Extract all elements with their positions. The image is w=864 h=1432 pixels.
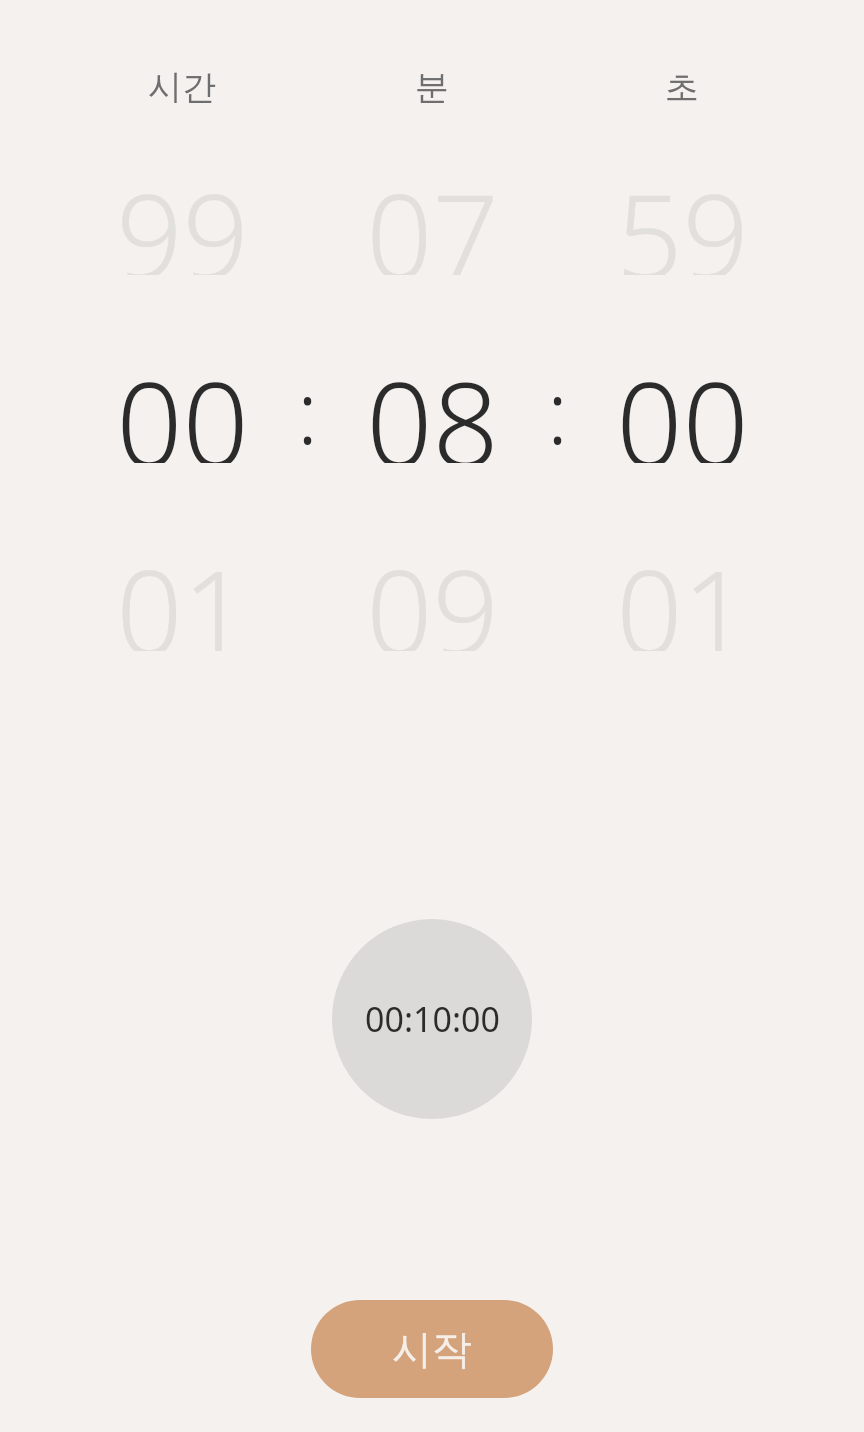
button[interactable]: 00:10:00 — [332, 919, 532, 1119]
button[interactable]: 07 — [307, 155, 557, 719]
staticText: : — [297, 352, 318, 469]
staticText: 분 — [415, 66, 449, 109]
staticText: 시작 — [392, 1324, 472, 1374]
staticText: 00 — [616, 343, 749, 463]
staticText: 59 — [616, 155, 749, 275]
staticText: 01 — [616, 531, 749, 651]
staticText: 초 — [665, 66, 699, 109]
button[interactable]: 59 — [557, 155, 807, 719]
button[interactable]: 시작 — [311, 1300, 553, 1398]
staticText: : — [547, 352, 568, 469]
staticText: 09 — [366, 531, 499, 651]
button[interactable]: 99 — [57, 155, 307, 719]
staticText: 00:10:00 — [365, 996, 500, 1042]
staticText: 08 — [366, 343, 499, 463]
staticText: 시간 — [148, 66, 216, 109]
staticText: 07 — [366, 155, 499, 275]
staticText: 99 — [116, 155, 249, 275]
staticText: 01 — [116, 531, 249, 651]
staticText: 00 — [116, 343, 249, 463]
